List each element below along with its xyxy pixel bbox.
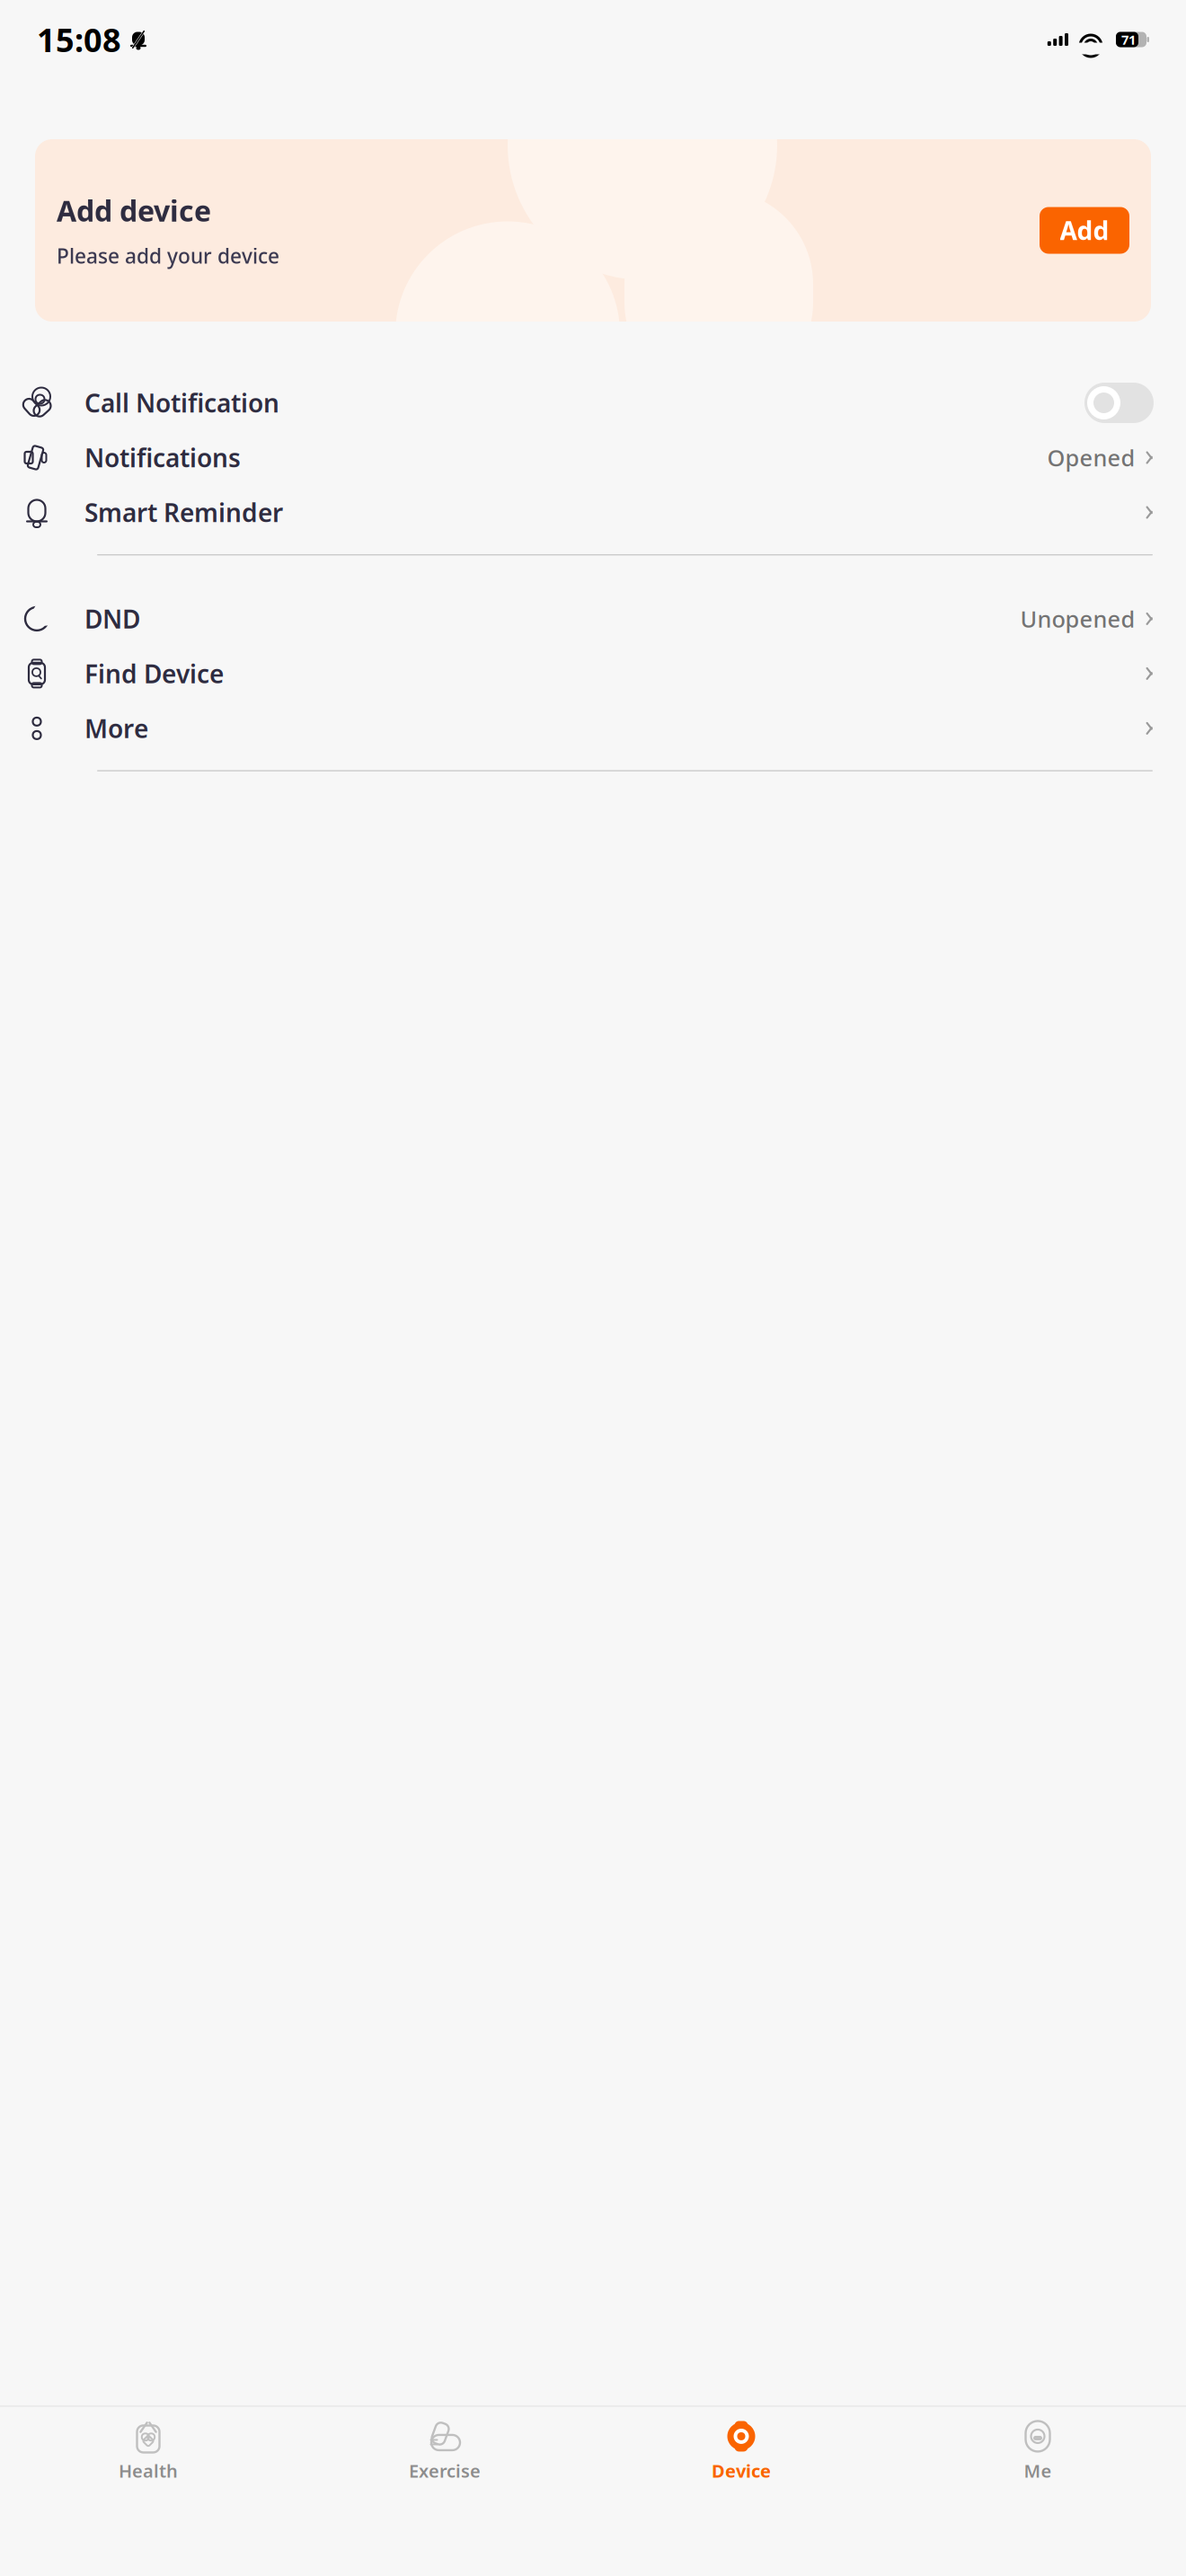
staticText: Exercise <box>409 2459 481 2483</box>
staticText: Me <box>1024 2459 1052 2483</box>
staticText: Device <box>712 2459 771 2483</box>
staticText: Please add your device <box>57 242 279 269</box>
staticText: More <box>84 712 148 745</box>
button[interactable]: Call Notification toggle, off <box>1084 383 1154 423</box>
button[interactable]: Device <box>593 2410 889 2486</box>
button[interactable]: Find Device <box>0 646 1186 701</box>
staticText: 71 <box>1121 31 1136 48</box>
staticText: 15:08 <box>37 18 121 61</box>
staticText: Smart Reminder <box>84 496 283 529</box>
staticText: Health <box>119 2459 178 2483</box>
staticText: Notifications <box>84 441 241 474</box>
button[interactable]: Me <box>889 2410 1186 2486</box>
button[interactable]: Exercise <box>296 2410 593 2486</box>
staticText: Call Notification <box>84 386 279 420</box>
button[interactable]: Notifications <box>0 430 1186 485</box>
button[interactable]: Add <box>1040 207 1129 254</box>
staticText: Opened <box>1047 443 1135 473</box>
button[interactable]: DND <box>0 591 1186 646</box>
button[interactable]: Health <box>0 2410 296 2486</box>
staticText: DND <box>84 602 140 635</box>
staticText: Add device <box>57 191 211 230</box>
staticText: Add <box>1060 214 1109 247</box>
button[interactable]: Smart Reminder <box>0 485 1186 540</box>
button[interactable]: More <box>0 701 1186 756</box>
button[interactable]: Call Notification <box>0 375 1186 430</box>
staticText: Unopened <box>1020 604 1135 634</box>
staticText: Find Device <box>84 657 224 690</box>
